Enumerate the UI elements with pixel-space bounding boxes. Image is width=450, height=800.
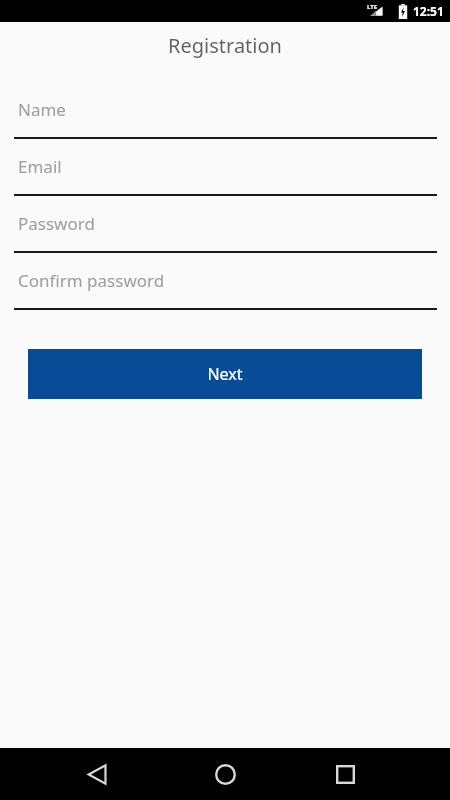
staticText: Password [18,212,95,235]
button[interactable]: Back [75,752,120,797]
button[interactable]: Confirm password [0,253,450,310]
staticText: 12:51 [413,3,444,19]
staticText: Name [18,98,66,121]
staticText: Registration [168,32,282,59]
button[interactable]: Home [203,752,248,797]
button[interactable]: Recent apps [323,752,368,797]
button[interactable]: Password [0,196,450,253]
button[interactable]: Next [28,349,422,399]
staticText: Email [18,155,62,178]
button[interactable]: Email [0,139,450,196]
staticText: Confirm password [18,269,165,292]
staticText: Next [207,363,243,385]
button[interactable]: Name [0,82,450,139]
staticText: LTE [367,3,378,11]
